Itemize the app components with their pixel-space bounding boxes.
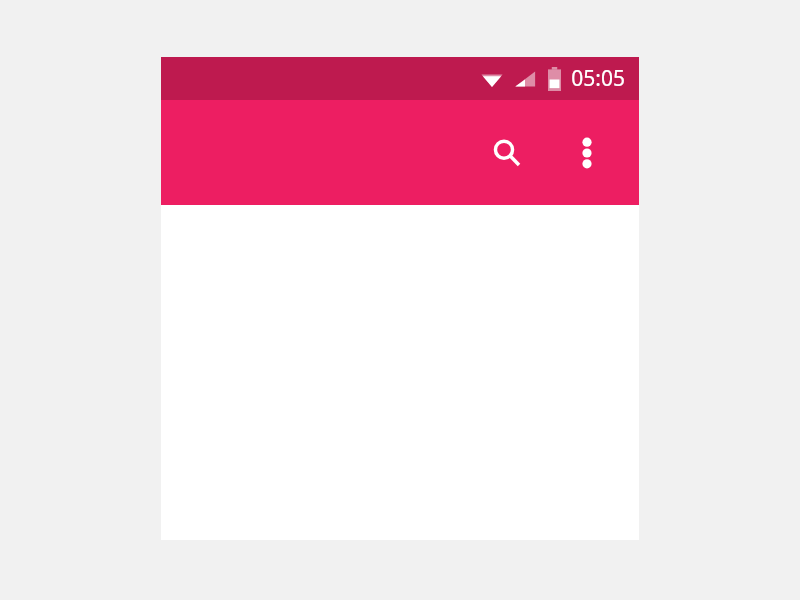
button[interactable]: More options (563, 129, 611, 177)
button[interactable]: Search (483, 129, 531, 177)
staticText: 05:05 (571, 64, 625, 93)
